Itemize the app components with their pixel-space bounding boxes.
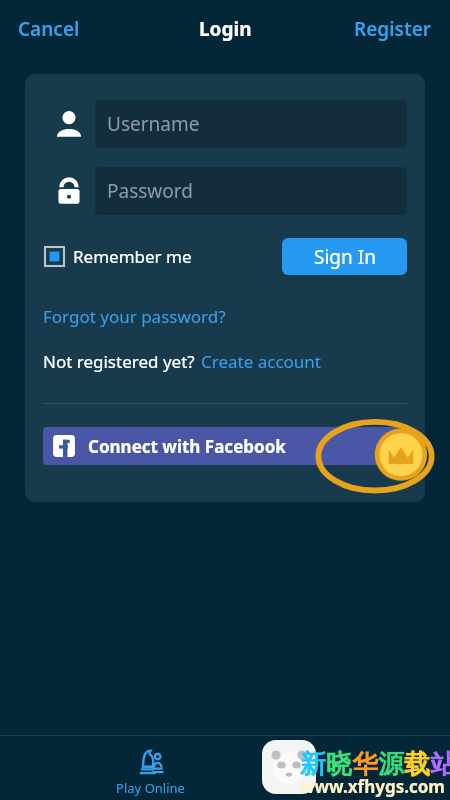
staticText: www.xfhygs.com	[300, 775, 445, 798]
staticText: 新	[300, 748, 326, 781]
staticText: Remember me	[73, 245, 192, 268]
button[interactable]: Cancel	[8, 8, 90, 50]
button[interactable]: Register	[344, 8, 442, 50]
staticText: 站	[430, 748, 450, 781]
staticText: Login	[199, 16, 252, 42]
staticText: Forgot your password?	[43, 305, 226, 328]
button[interactable]: Connect with Facebook	[43, 427, 407, 465]
staticText: Username	[107, 111, 200, 137]
staticText: Password	[107, 178, 193, 204]
button[interactable]: Username	[95, 100, 407, 148]
staticText: 源	[378, 748, 404, 781]
other: App icon	[262, 740, 316, 794]
button[interactable]: Forgot your password?	[43, 302, 226, 331]
button[interactable]: Remember me	[43, 241, 194, 272]
staticText: 华	[352, 748, 378, 781]
staticText: Cancel	[18, 16, 80, 42]
staticText: Not registered yet?	[43, 350, 195, 373]
staticText: 载	[404, 748, 430, 781]
staticText: 晓	[326, 748, 352, 781]
staticText: Connect with Facebook	[88, 435, 286, 458]
button[interactable]: Create account	[201, 347, 321, 376]
staticText: Sign In	[314, 244, 376, 270]
button[interactable]: Play Online	[80, 742, 220, 800]
button[interactable]: Password	[95, 167, 407, 215]
staticText: Play Online	[116, 779, 185, 797]
staticText: Register	[354, 16, 432, 42]
staticText: Create account	[201, 350, 321, 373]
button[interactable]: Sign In	[282, 238, 407, 275]
